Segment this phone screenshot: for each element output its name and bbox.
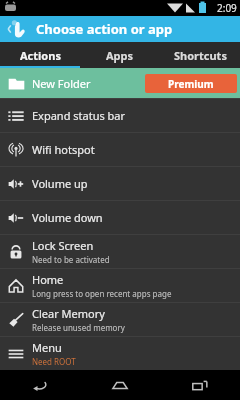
staticText: Menu <box>32 340 62 355</box>
staticText: Premium <box>168 77 214 91</box>
button[interactable]: Back <box>0 370 80 400</box>
button[interactable]: Recent apps <box>160 370 240 400</box>
staticText: Wifi hotspot <box>32 142 95 157</box>
button[interactable]: Volume up <box>0 167 240 200</box>
staticText: Clear Memory <box>32 306 105 321</box>
button[interactable]: Home <box>0 269 240 302</box>
button[interactable]: Premium <box>145 74 237 93</box>
staticText: Home <box>32 272 64 287</box>
button[interactable]: Shortcuts <box>160 42 240 68</box>
staticText: 2:09 <box>217 1 237 15</box>
staticText: Shortcuts <box>174 48 227 63</box>
staticText: Long press to open recent apps page <box>32 288 172 299</box>
button[interactable]: Apps <box>80 42 160 68</box>
button[interactable]: Expand status bar <box>0 99 240 132</box>
button[interactable]: Volume down <box>0 201 240 234</box>
button[interactable]: Wifi hotspot <box>0 133 240 166</box>
button[interactable]: New Folder <box>0 68 240 98</box>
staticText: Need ROOT <box>32 356 76 367</box>
button[interactable]: Clear Memory <box>0 303 240 336</box>
staticText: Choose action or app <box>36 20 173 38</box>
button[interactable]: Back <box>0 16 34 42</box>
button[interactable]: Lock Screen <box>0 235 240 268</box>
staticText: Actions <box>20 48 61 63</box>
button[interactable]: Actions <box>0 42 80 68</box>
staticText: New Folder <box>32 76 91 91</box>
button[interactable]: Home <box>80 370 160 400</box>
staticText: Apps <box>106 48 134 63</box>
staticText: Release unused memory <box>32 322 125 333</box>
staticText: Expand status bar <box>32 108 126 123</box>
staticText: Lock Screen <box>32 238 94 253</box>
staticText: Need to be activated <box>32 254 110 265</box>
button[interactable]: Menu <box>0 337 240 370</box>
staticText: Volume down <box>32 210 103 225</box>
staticText: Volume up <box>32 176 88 191</box>
